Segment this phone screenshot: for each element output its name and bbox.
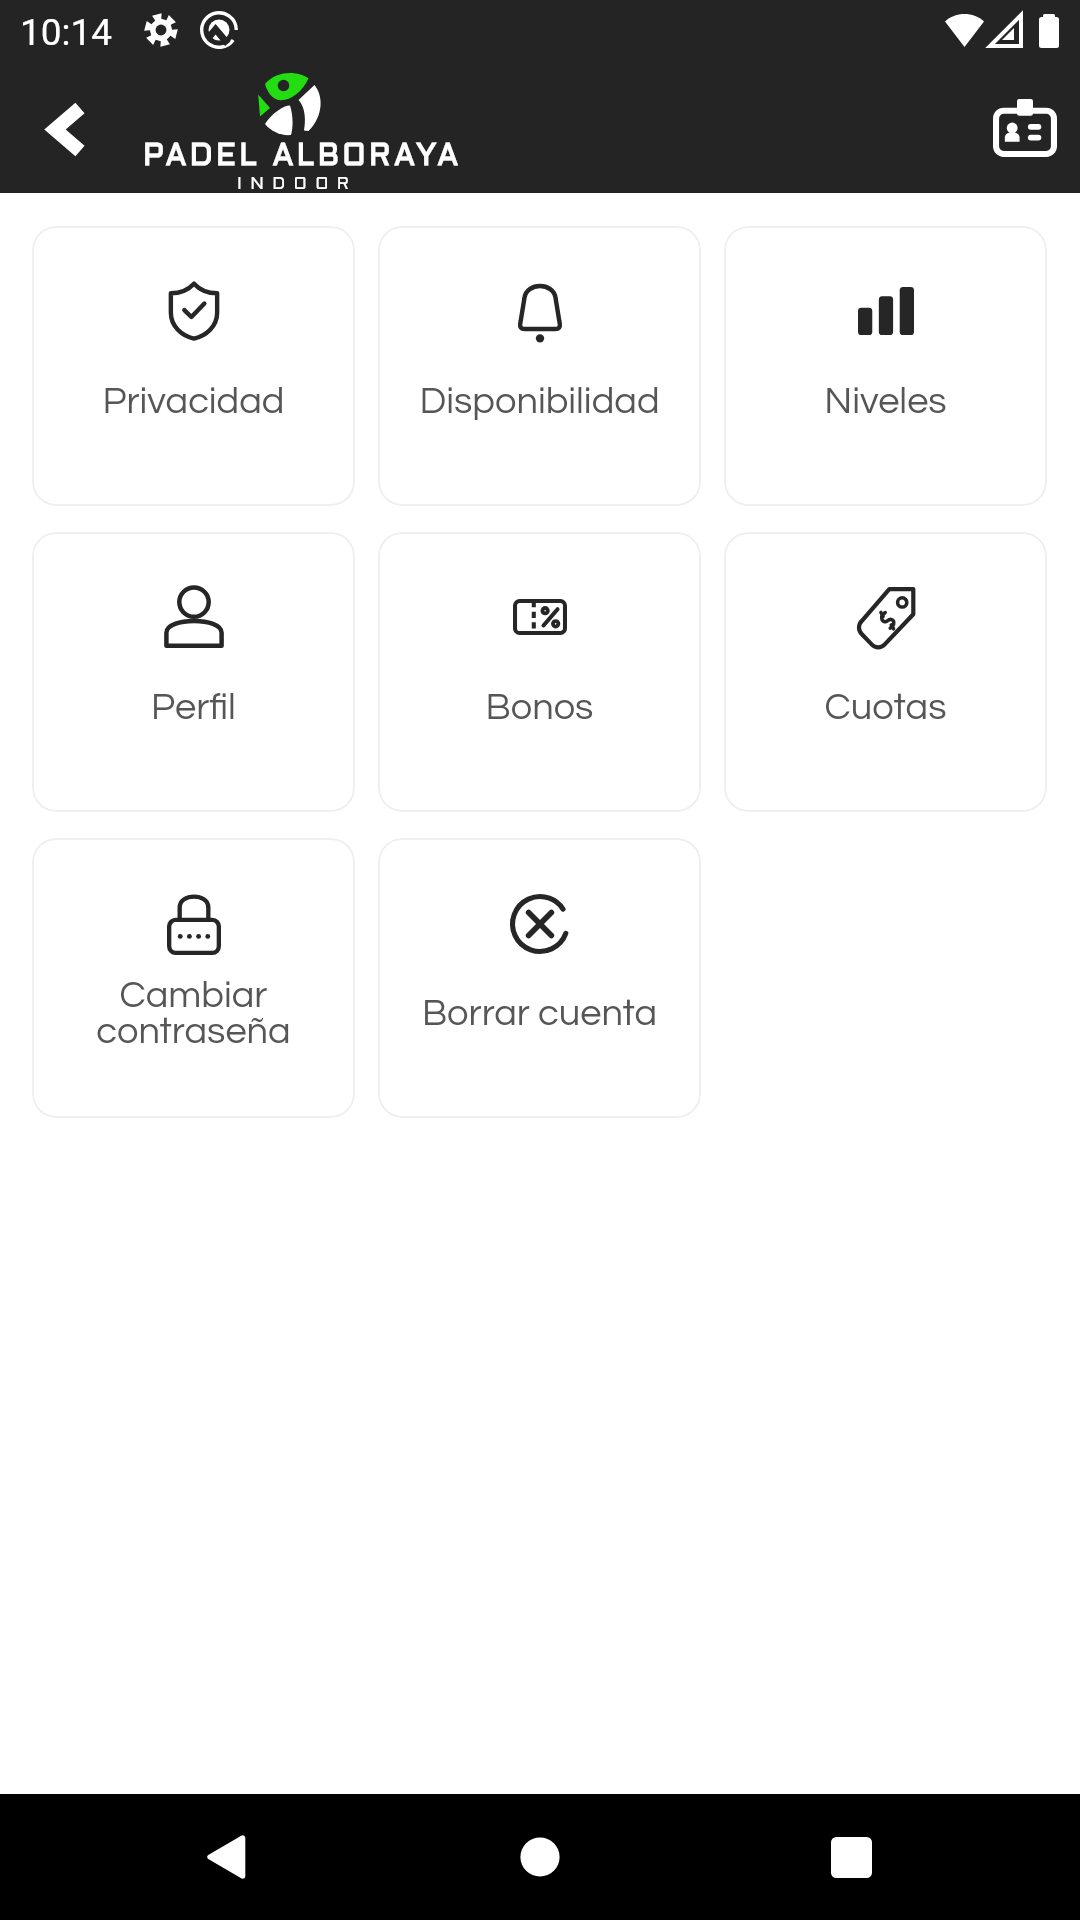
staticText: Borrar cuenta [378, 994, 701, 1033]
button[interactable]: Borrar cuenta [378, 838, 701, 1118]
button[interactable]: Back [182, 1812, 272, 1902]
button[interactable]: Perfil [32, 532, 355, 812]
button[interactable]: Bonos [378, 532, 701, 812]
staticText: Bonos [378, 688, 701, 727]
button[interactable]: Member card [982, 84, 1068, 170]
staticText: PADEL ALBORAYA [143, 143, 462, 171]
button[interactable]: Home [495, 1812, 585, 1902]
button[interactable]: Cambiar contraseña [32, 838, 355, 1118]
staticText: Perfil [32, 688, 355, 727]
staticText: Cambiar contraseña [32, 976, 355, 1051]
button[interactable]: Cuotas [724, 532, 1047, 812]
staticText: Privacidad [32, 382, 355, 421]
button[interactable]: Niveles [724, 226, 1047, 506]
button[interactable]: Back [19, 84, 109, 174]
staticText: Cuotas [724, 688, 1047, 727]
button[interactable]: Privacidad [32, 226, 355, 506]
staticText: Niveles [724, 382, 1047, 421]
staticText: 10:14 [20, 11, 113, 54]
staticText: INDOOR [237, 177, 358, 193]
staticText: Disponibilidad [378, 382, 701, 421]
button[interactable]: Disponibilidad [378, 226, 701, 506]
button[interactable]: Recent apps [806, 1812, 896, 1902]
